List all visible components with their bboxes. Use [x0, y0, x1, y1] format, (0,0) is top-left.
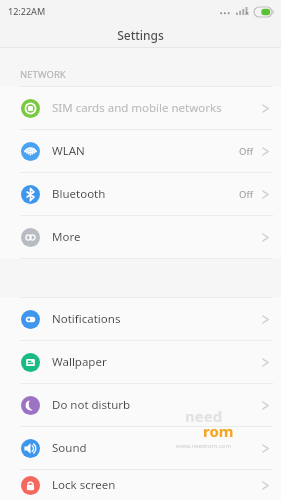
staticText: Off — [239, 145, 253, 158]
staticText: Bluetooth — [52, 186, 106, 202]
button[interactable]: WLAN — [0, 130, 281, 172]
staticText: Off — [239, 188, 253, 201]
staticText: Settings — [117, 27, 164, 43]
button[interactable]: Notifications — [0, 298, 281, 340]
staticText: Wallpaper — [52, 354, 107, 370]
staticText: SIM cards and mobile networks — [52, 100, 222, 116]
button[interactable]: Bluetooth — [0, 173, 281, 215]
staticText: Do not disturb — [52, 397, 131, 413]
button[interactable]: Lock screen — [0, 470, 281, 500]
staticText: WLAN — [52, 143, 85, 159]
button[interactable]: More — [0, 216, 281, 258]
staticText: Notifications — [52, 311, 121, 327]
staticText: need — [185, 406, 223, 426]
staticText: NETWORK — [20, 68, 66, 81]
staticText: Sound — [52, 440, 87, 456]
button[interactable]: SIM cards and mobile networks — [0, 87, 281, 129]
button[interactable]: Do not disturb — [0, 384, 281, 426]
staticText: rom — [203, 421, 234, 441]
button[interactable]: Wallpaper — [0, 341, 281, 383]
staticText: Lock screen — [52, 477, 116, 493]
staticText: 12:22AM — [8, 5, 46, 17]
staticText: More — [52, 229, 81, 245]
button[interactable]: Sound — [0, 427, 281, 469]
staticText: www.needrom.com — [176, 442, 232, 450]
